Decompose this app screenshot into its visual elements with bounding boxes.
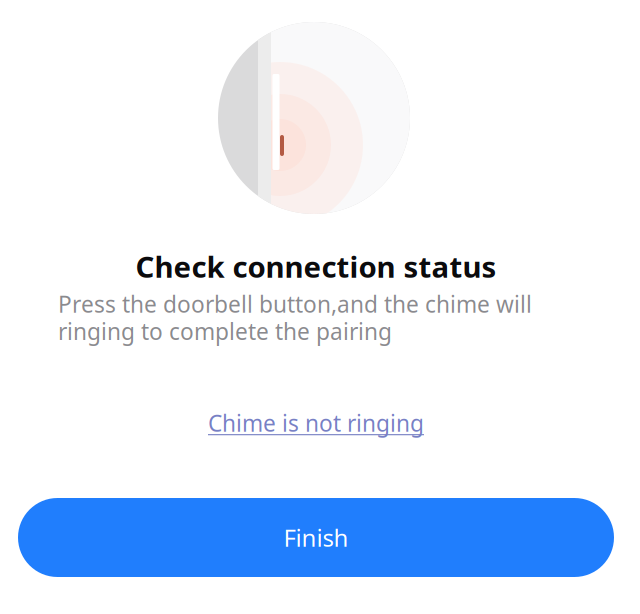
button[interactable]: Finish	[18, 498, 614, 577]
staticText: Chime is not ringing	[208, 408, 424, 438]
staticText: Finish	[283, 522, 348, 553]
button[interactable]: Chime is not ringing	[166, 400, 466, 446]
staticText: Check connection status	[135, 247, 496, 286]
staticText: Press the doorbell button,and the chime …	[58, 289, 532, 346]
